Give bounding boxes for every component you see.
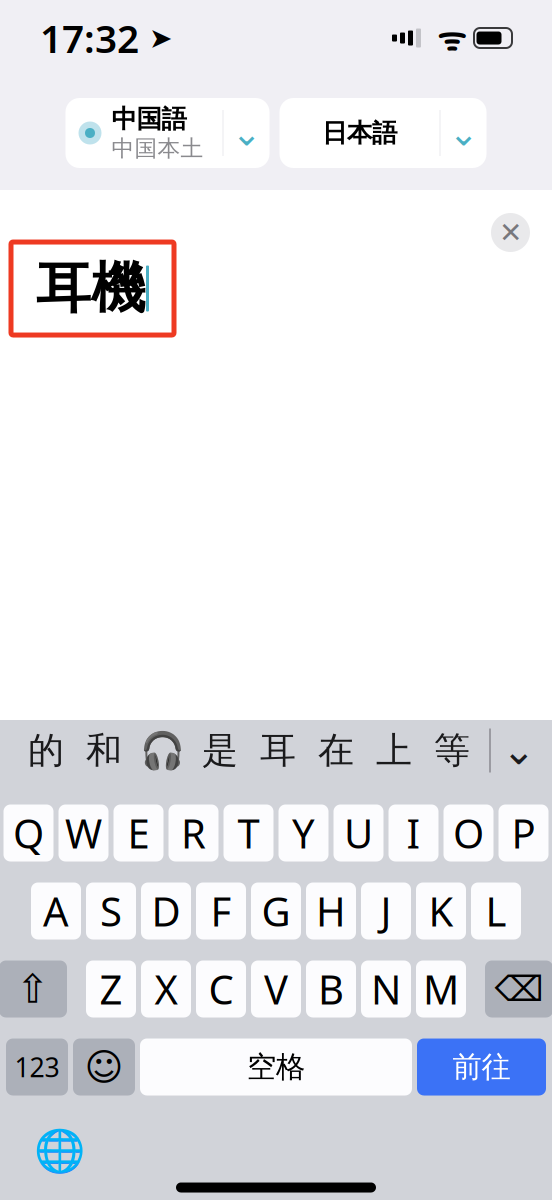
staticText: O (453, 806, 484, 859)
button[interactable]: 是 (191, 719, 249, 781)
button[interactable]: 空格 (140, 1038, 412, 1095)
button[interactable]: U (333, 804, 383, 861)
staticText: 耳 (260, 728, 296, 773)
button[interactable]: A (31, 882, 81, 939)
button[interactable]: L (471, 882, 521, 939)
staticText: ⌄ (448, 113, 478, 153)
button[interactable]: 🎧 (133, 719, 191, 781)
staticText: 🌐 (33, 1127, 84, 1174)
staticText: 空格 (247, 1049, 305, 1085)
button[interactable]: Hide candidates (491, 719, 547, 781)
button[interactable]: T (223, 804, 273, 861)
staticText: W (65, 806, 102, 859)
staticText: 前往 (452, 1049, 510, 1085)
staticText: K (428, 884, 453, 937)
staticText: P (511, 806, 535, 859)
button[interactable]: 日本語 (279, 98, 486, 168)
staticText: 上 (376, 728, 412, 773)
staticText: 的 (28, 728, 64, 773)
staticText: N (371, 962, 401, 1015)
staticText: 在 (318, 728, 354, 773)
staticText: ᯤ (421, 17, 466, 59)
button[interactable]: 等 (423, 719, 481, 781)
button[interactable]: V (251, 960, 301, 1017)
button[interactable]: B (306, 960, 356, 1017)
staticText: 中国語 (111, 103, 186, 135)
staticText: 是 (202, 728, 238, 773)
staticText: G (261, 884, 290, 937)
button[interactable]: Shift (0, 960, 67, 1017)
button[interactable]: H (306, 882, 356, 939)
staticText: 日本語 (322, 117, 397, 148)
button[interactable]: Y (278, 804, 328, 861)
button[interactable]: F (196, 882, 246, 939)
staticText: M (423, 962, 459, 1015)
button[interactable]: Z (86, 960, 136, 1017)
staticText: 17:32 (40, 12, 139, 64)
staticText: B (318, 962, 344, 1015)
button[interactable]: 上 (365, 719, 423, 781)
button[interactable]: 在 (307, 719, 365, 781)
button[interactable]: R (168, 804, 218, 861)
staticText: C (208, 962, 233, 1015)
staticText: Q (13, 806, 44, 859)
button[interactable]: Delete (485, 960, 552, 1017)
staticText: ⌄ (502, 728, 536, 773)
staticText: 耳機 (36, 255, 146, 322)
button[interactable]: 中国語 (65, 98, 269, 168)
staticText: T (237, 806, 259, 859)
button[interactable]: Clear text (491, 213, 530, 252)
staticText: S (100, 884, 122, 937)
button[interactable]: M (416, 960, 466, 1017)
staticText: Y (292, 806, 315, 859)
button[interactable]: 的 (17, 719, 75, 781)
staticText: 等 (434, 728, 470, 773)
button[interactable]: C (196, 960, 246, 1017)
staticText: F (210, 884, 231, 937)
staticText: V (264, 962, 288, 1015)
button[interactable]: Switch keyboard (34, 1125, 84, 1175)
button[interactable]: K (416, 882, 466, 939)
staticText: A (43, 884, 69, 937)
button[interactable]: Emoji (73, 1038, 135, 1095)
staticText: X (154, 962, 177, 1015)
staticText: ➤ (139, 22, 172, 54)
staticText: E (127, 806, 149, 859)
staticText: J (380, 884, 391, 937)
staticText: ⌫ (494, 969, 543, 1009)
button[interactable]: G (251, 882, 301, 939)
staticText: L (485, 884, 506, 937)
staticText: 中国本土 (111, 135, 203, 162)
button[interactable]: N (361, 960, 411, 1017)
staticText: 🎧 (139, 730, 184, 771)
staticText: U (344, 806, 373, 859)
button[interactable]: W (58, 804, 108, 861)
staticText: I (406, 806, 420, 859)
staticText: 和 (86, 728, 122, 773)
button[interactable]: I (388, 804, 438, 861)
button[interactable]: Numbers (6, 1038, 68, 1095)
staticText: ✕ (499, 217, 522, 248)
button[interactable]: E (113, 804, 163, 861)
button[interactable]: P (498, 804, 548, 861)
staticText: 123 (14, 1049, 59, 1085)
staticText: Z (99, 962, 122, 1015)
button[interactable]: 前往 (417, 1038, 546, 1095)
staticText: ⇧ (16, 966, 50, 1012)
button[interactable]: 和 (75, 719, 133, 781)
button[interactable]: D (141, 882, 191, 939)
button[interactable]: Q (3, 804, 53, 861)
button[interactable]: S (86, 882, 136, 939)
button[interactable]: J (361, 882, 411, 939)
button[interactable]: X (141, 960, 191, 1017)
staticText: R (181, 806, 206, 859)
staticText: D (151, 884, 180, 937)
staticText: ☺ (84, 1046, 123, 1088)
staticText: H (316, 884, 346, 937)
button[interactable]: O (443, 804, 493, 861)
staticText: ⌄ (231, 113, 261, 153)
button[interactable]: 耳 (249, 719, 307, 781)
